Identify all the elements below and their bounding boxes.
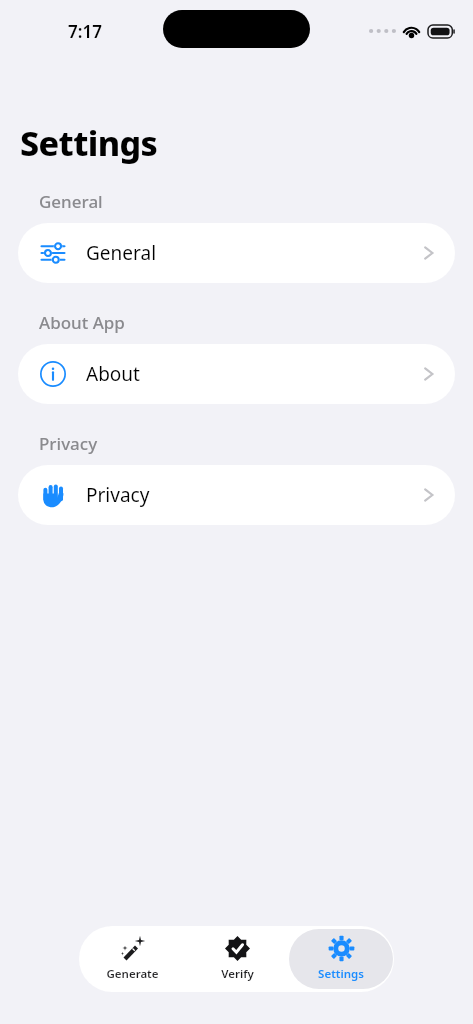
staticText: Settings [318, 966, 364, 982]
button[interactable]: Privacy [18, 465, 455, 525]
other: Generate [120, 936, 145, 961]
staticText: About App [39, 311, 125, 334]
button[interactable]: Verify [185, 929, 289, 989]
staticText: Generate [106, 966, 159, 982]
staticText: General [86, 240, 157, 266]
button[interactable]: Generate [80, 929, 184, 989]
button[interactable]: About [18, 344, 455, 404]
staticText: About [86, 361, 140, 387]
staticText: Privacy [86, 482, 150, 508]
other: Verify [225, 936, 250, 961]
button[interactable]: Settings [289, 929, 393, 989]
button[interactable]: General [18, 223, 455, 283]
staticText: General [39, 190, 103, 213]
staticText: Verify [221, 966, 254, 982]
staticText: Settings [20, 120, 158, 166]
staticText: 7:17 [68, 20, 102, 43]
other: Settings [329, 936, 354, 961]
staticText: Privacy [39, 432, 98, 455]
